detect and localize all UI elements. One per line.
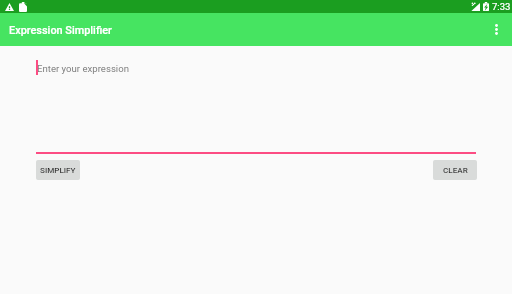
staticText: 7:33 [492,1,511,12]
staticText: Expression Simplifier [9,24,112,37]
button[interactable]: SIMPLIFY [36,160,80,180]
staticText: CLEAR [443,165,468,174]
button[interactable]: More options [482,13,511,46]
staticText: SIMPLIFY [40,165,76,174]
staticText: Enter your expression [37,63,129,74]
button[interactable]: CLEAR [433,160,477,180]
button[interactable]: Enter your expression [36,56,476,154]
